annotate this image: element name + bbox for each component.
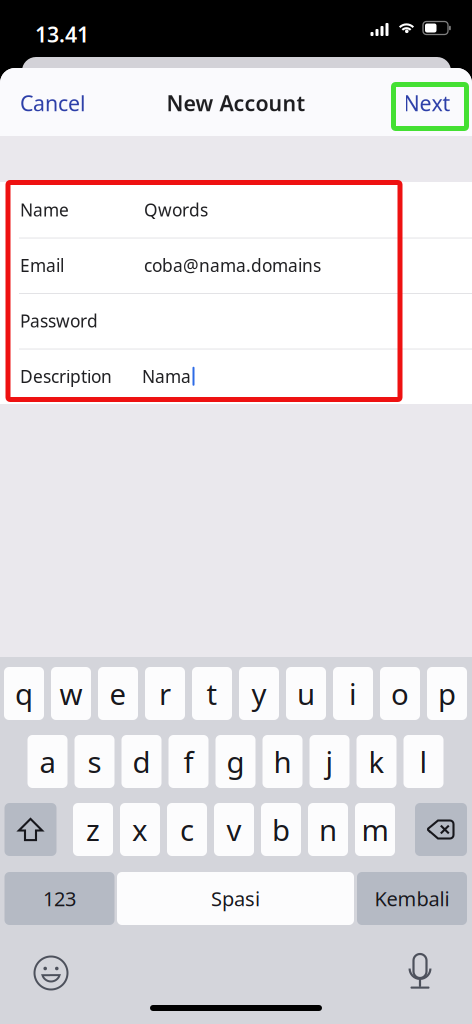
staticText: n bbox=[319, 810, 337, 849]
staticText: u bbox=[297, 674, 315, 713]
button[interactable]: Emoji keyboard bbox=[33, 955, 69, 991]
staticText: e bbox=[109, 674, 126, 713]
staticText: Spasi bbox=[211, 885, 260, 912]
staticText: New Account bbox=[166, 89, 305, 117]
staticText: b bbox=[272, 810, 290, 849]
staticText: x bbox=[132, 810, 148, 849]
button[interactable]: Name bbox=[0, 182, 472, 237]
staticText: Kembali bbox=[374, 885, 449, 912]
button[interactable]: Email bbox=[0, 237, 472, 293]
staticText: f bbox=[183, 742, 193, 781]
staticText: Password bbox=[20, 309, 98, 332]
staticText: p bbox=[438, 674, 456, 713]
button[interactable]: k bbox=[356, 735, 396, 788]
button[interactable]: u bbox=[286, 667, 326, 720]
button[interactable]: j bbox=[309, 735, 349, 788]
button[interactable]: Kembali bbox=[357, 872, 467, 925]
staticText: q bbox=[15, 674, 33, 713]
staticText: Cancel bbox=[20, 89, 86, 117]
button[interactable]: Next bbox=[389, 79, 465, 127]
button[interactable]: Dictation bbox=[408, 954, 432, 990]
button[interactable]: o bbox=[380, 667, 420, 720]
staticText: i bbox=[349, 674, 357, 713]
button[interactable]: w bbox=[51, 667, 91, 720]
staticText: t bbox=[206, 674, 217, 713]
staticText: 123 bbox=[43, 885, 76, 912]
staticText: y bbox=[251, 674, 266, 713]
staticText: 13.41 bbox=[35, 20, 89, 48]
staticText: o bbox=[391, 674, 409, 713]
button[interactable]: c bbox=[167, 803, 207, 856]
button[interactable]: l bbox=[403, 735, 443, 788]
button[interactable]: b bbox=[261, 803, 301, 856]
button[interactable]: r bbox=[145, 667, 185, 720]
button[interactable]: t bbox=[192, 667, 232, 720]
button[interactable]: x bbox=[120, 803, 160, 856]
staticText: Description bbox=[20, 365, 112, 388]
staticText: v bbox=[226, 810, 241, 849]
staticText: z bbox=[86, 810, 100, 849]
staticText: Nama bbox=[142, 365, 191, 388]
button[interactable]: z bbox=[73, 803, 113, 856]
button[interactable]: h bbox=[262, 735, 302, 788]
button[interactable]: p bbox=[427, 667, 467, 720]
staticText: Email bbox=[20, 254, 64, 277]
staticText: s bbox=[87, 742, 101, 781]
staticText: w bbox=[59, 674, 82, 713]
staticText: c bbox=[180, 810, 194, 849]
button[interactable]: Spasi bbox=[117, 872, 354, 925]
button[interactable]: g bbox=[215, 735, 255, 788]
staticText: Next bbox=[403, 89, 450, 117]
button[interactable]: s bbox=[74, 735, 114, 788]
button[interactable]: Shift bbox=[4, 803, 56, 856]
button[interactable]: v bbox=[214, 803, 254, 856]
button[interactable]: e bbox=[98, 667, 138, 720]
staticText: d bbox=[132, 742, 150, 781]
staticText: g bbox=[226, 742, 244, 781]
button[interactable]: q bbox=[4, 667, 44, 720]
button[interactable]: n bbox=[308, 803, 348, 856]
button[interactable]: d bbox=[121, 735, 161, 788]
staticText: coba@nama.domains bbox=[144, 254, 321, 277]
button[interactable]: a bbox=[27, 735, 67, 788]
button[interactable]: m bbox=[355, 803, 395, 856]
button[interactable]: Description bbox=[0, 348, 472, 404]
button[interactable]: i bbox=[333, 667, 373, 720]
button[interactable]: Password bbox=[0, 293, 472, 348]
button[interactable]: Cancel bbox=[0, 79, 92, 127]
staticText: j bbox=[325, 742, 333, 781]
button[interactable]: y bbox=[239, 667, 279, 720]
staticText: Name bbox=[20, 198, 69, 221]
button[interactable]: 123 bbox=[4, 872, 114, 925]
button[interactable]: f bbox=[168, 735, 208, 788]
staticText: a bbox=[39, 742, 55, 781]
staticText: r bbox=[159, 674, 171, 713]
staticText: m bbox=[361, 810, 388, 849]
staticText: h bbox=[273, 742, 291, 781]
button[interactable]: Delete bbox=[415, 803, 467, 856]
staticText: l bbox=[419, 742, 427, 781]
staticText: k bbox=[368, 742, 384, 781]
staticText: Qwords bbox=[144, 198, 208, 221]
